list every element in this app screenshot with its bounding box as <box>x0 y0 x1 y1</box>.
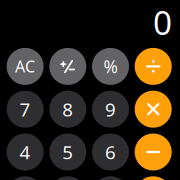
button[interactable]: Plus minus <box>49 48 86 85</box>
button[interactable]: 7 <box>7 91 44 128</box>
staticText: 6 <box>105 140 116 164</box>
button[interactable]: 6 <box>92 133 129 170</box>
button[interactable]: Percent <box>92 48 129 85</box>
staticText: 7 <box>20 97 31 122</box>
staticText: 0 <box>153 0 172 44</box>
button[interactable]: 1 <box>7 176 44 180</box>
staticText: 9 <box>105 97 116 122</box>
button[interactable]: Minus <box>135 133 172 170</box>
button[interactable]: 3 <box>92 176 129 180</box>
button[interactable]: 5 <box>49 133 86 170</box>
button[interactable]: 9 <box>92 91 129 128</box>
button[interactable]: 8 <box>49 91 86 128</box>
button[interactable]: 2 <box>49 176 86 180</box>
button[interactable]: Divide <box>135 48 172 85</box>
button[interactable]: AC <box>7 48 44 85</box>
staticText: 5 <box>62 140 73 164</box>
staticText: % <box>103 55 117 78</box>
button[interactable]: 4 <box>7 133 44 170</box>
staticText: 8 <box>62 97 73 122</box>
staticText: AC <box>15 56 35 77</box>
button[interactable]: Plus <box>135 176 172 180</box>
button[interactable]: Multiply <box>135 91 172 128</box>
staticText: 4 <box>20 140 31 164</box>
